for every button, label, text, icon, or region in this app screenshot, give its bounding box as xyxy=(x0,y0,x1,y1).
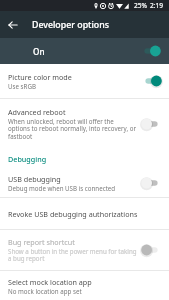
staticText: When unlocked, reboot will offer the opt… xyxy=(8,117,137,141)
staticText: Select mock location app xyxy=(8,277,92,287)
button[interactable]: Picture color mode xyxy=(0,64,169,98)
button[interactable]: Advanced reboot xyxy=(0,99,169,148)
staticText: 2:19 xyxy=(150,1,164,10)
staticText: Debugging xyxy=(8,154,47,164)
staticText: Revoke USB debugging authorizations xyxy=(8,209,138,219)
staticText: No mock location app set xyxy=(8,287,82,295)
staticText: Use sRGB xyxy=(8,82,36,90)
button[interactable]: Bug report shortcut xyxy=(0,230,169,270)
staticText: Picture color mode xyxy=(8,72,72,82)
staticText: Show a button in the power menu for taki… xyxy=(8,247,137,263)
staticText: Debug mode when USB is connected xyxy=(8,184,116,192)
button[interactable]: USB debugging xyxy=(0,168,169,197)
button[interactable]: Select mock location app xyxy=(0,271,169,300)
staticText: 25% xyxy=(134,1,148,10)
button[interactable]: Revoke USB debugging authorizations xyxy=(0,198,169,229)
staticText: Advanced reboot xyxy=(8,107,66,117)
button[interactable]: On xyxy=(0,38,169,64)
staticText: On xyxy=(33,46,45,57)
staticText: USB debugging xyxy=(8,174,61,184)
button[interactable]: Back xyxy=(0,11,32,38)
staticText: Bug report shortcut xyxy=(8,237,75,247)
staticText: Developer options xyxy=(32,19,109,31)
